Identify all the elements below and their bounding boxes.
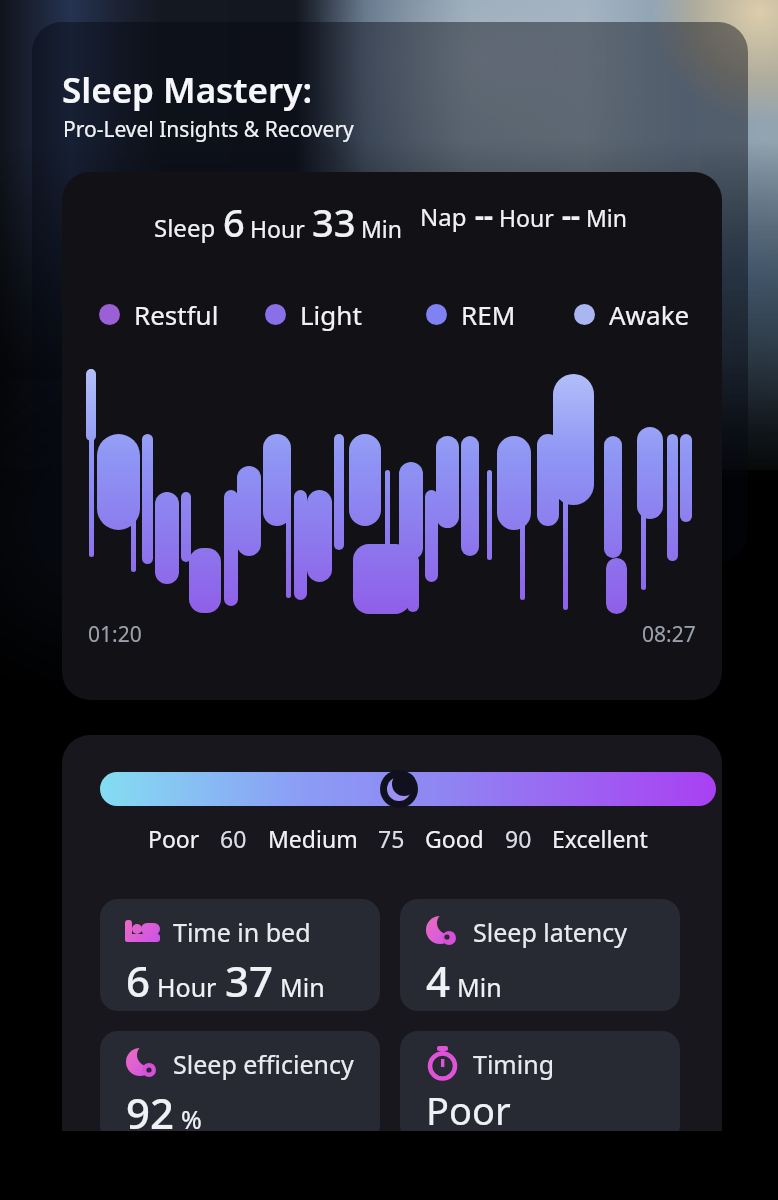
staticText: Min [457,970,502,1004]
staticText: REM [461,297,516,332]
staticText: 92 [126,1084,175,1131]
staticText: Sleep latency [473,915,628,949]
staticText: 6 [126,952,151,1009]
staticText: Sleep Mastery: [62,66,313,114]
staticText: 01:20 [88,620,142,649]
staticText: Good [425,823,484,854]
button[interactable]: Sleep latency [400,899,680,1011]
staticText: Time in bed [173,915,311,949]
staticText: 33 [312,196,356,248]
button[interactable] [100,772,716,806]
staticText: Nap [420,200,467,233]
staticText: % [181,1102,202,1131]
staticText: Min [280,970,325,1004]
staticText: 6 [223,196,245,248]
button[interactable]: Timing [400,1031,680,1131]
staticText: Hour [250,213,305,244]
button[interactable]: Sleep efficiency [100,1031,380,1131]
staticText: Light [300,297,362,332]
staticText: 08:27 [642,620,696,649]
staticText: Pro-Level Insights & Recovery [63,115,354,144]
staticText: -- [562,196,580,234]
staticText: Min [586,202,628,233]
staticText: 4 [426,952,451,1009]
staticText: Awake [609,297,690,332]
staticText: Poor [426,1084,511,1131]
staticText: -- [475,196,493,234]
staticText: 37 [225,952,274,1009]
staticText: Timing [473,1047,555,1081]
staticText: Hour [499,202,554,233]
staticText: 60 [220,823,247,854]
staticText: 90 [505,823,532,854]
staticText: Poor [148,823,200,854]
staticText: Restful [134,297,219,332]
staticText: Sleep efficiency [173,1047,354,1081]
button[interactable]: Time in bed [100,899,380,1011]
staticText: Excellent [552,823,648,854]
staticText: Min [361,213,403,244]
staticText: Hour [157,970,217,1004]
staticText: Medium [268,823,358,854]
staticText: 75 [378,823,405,854]
staticText: Sleep [154,211,216,244]
